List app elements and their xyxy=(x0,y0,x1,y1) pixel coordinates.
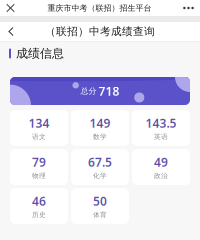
staticText: 总分 xyxy=(80,86,96,96)
staticText: 718 xyxy=(98,83,119,99)
button[interactable]: 67.5 xyxy=(71,149,129,185)
button[interactable]: 149 xyxy=(71,110,129,146)
staticText: 体育 xyxy=(93,211,107,219)
staticText: 149 xyxy=(89,115,110,131)
button[interactable]: 46 xyxy=(10,188,68,224)
button[interactable]: 50 xyxy=(71,188,129,224)
staticText: 143.5 xyxy=(145,115,176,131)
staticText: 物理 xyxy=(32,172,46,180)
staticText: 历史 xyxy=(32,211,46,219)
staticText: 50 xyxy=(93,193,107,209)
staticText: 49 xyxy=(154,154,168,170)
staticText: 重庆市中考（联招）招生平台 xyxy=(47,3,151,13)
staticText: 成绩信息 xyxy=(16,46,64,61)
button[interactable]: Close xyxy=(3,0,18,16)
button[interactable]: More xyxy=(181,0,196,16)
staticText: 化学 xyxy=(93,172,107,180)
staticText: 语文 xyxy=(32,133,46,141)
button[interactable]: 79 xyxy=(10,149,68,185)
staticText: 134 xyxy=(28,115,49,131)
staticText: 数学 xyxy=(93,133,107,141)
button[interactable]: 134 xyxy=(10,110,68,146)
staticText: 67.5 xyxy=(88,154,112,170)
button[interactable]: 143.5 xyxy=(132,110,190,146)
staticText: 46 xyxy=(32,193,46,209)
staticText: 英语 xyxy=(154,133,168,141)
staticText: （联招）中考成绩查询 xyxy=(45,25,155,38)
button[interactable]: Back xyxy=(0,22,22,41)
button[interactable]: 49 xyxy=(132,149,190,185)
staticText: 政治 xyxy=(154,172,168,180)
staticText: 79 xyxy=(32,154,46,170)
